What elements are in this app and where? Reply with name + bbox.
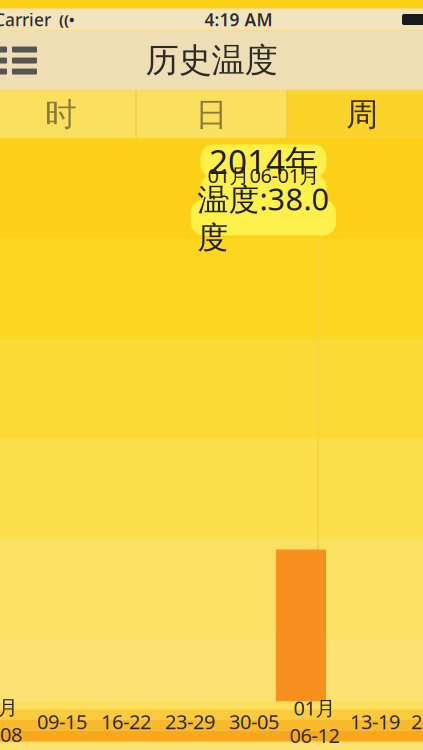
button[interactable]: Menu [0,30,50,90]
staticText: 09-15 [37,708,87,735]
staticText: 时 [45,95,77,134]
button[interactable]: 日 [137,90,286,138]
staticText: 历史温度 [145,40,277,81]
staticText: 06-12 [289,722,339,749]
staticText: 23-29 [165,708,215,735]
staticText: 01月06-01月12 [207,162,319,215]
staticText: ((• [51,10,75,29]
staticText: 周 [346,95,378,134]
staticText: 温度:38.0度 [197,178,329,257]
staticText: 20 [411,708,423,735]
staticText: -08 [0,721,22,748]
staticText: 30-05 [229,708,279,735]
button[interactable]: 周 [287,90,423,138]
staticText: 13-19 [350,708,400,735]
staticText: 月 [0,695,18,720]
staticText: 4:19 AM [204,8,272,31]
button[interactable]: 时 [0,90,136,138]
staticText: Carrier [0,8,51,31]
staticText: 01月 [293,694,335,721]
staticText: 日 [195,95,227,134]
staticText: 16-22 [101,708,151,735]
staticText: 2014年 [209,139,318,183]
